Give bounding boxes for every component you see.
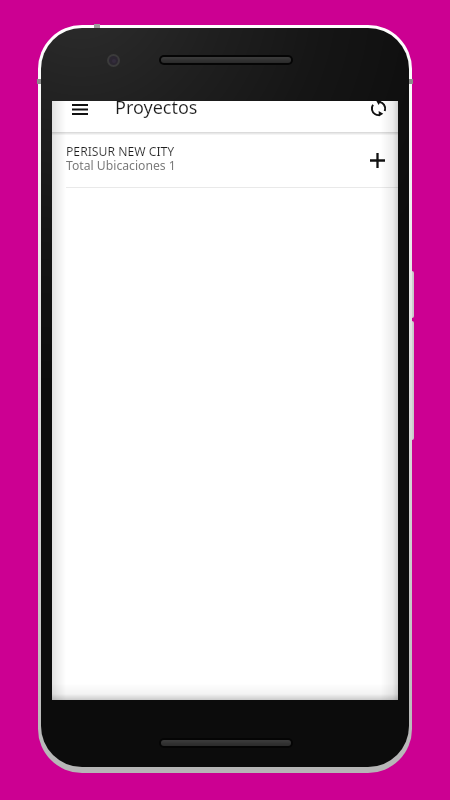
button[interactable]: Add location	[362, 145, 392, 175]
staticText: PERISUR NEW CITY	[66, 143, 175, 160]
staticText: Proyectos	[115, 101, 198, 120]
button[interactable]: Open navigation menu	[68, 101, 92, 121]
staticText: Total Ubicaciones 1	[66, 157, 176, 174]
button[interactable]: Refresh	[366, 101, 391, 121]
button[interactable]: PERISUR NEW CITY	[52, 133, 398, 188]
